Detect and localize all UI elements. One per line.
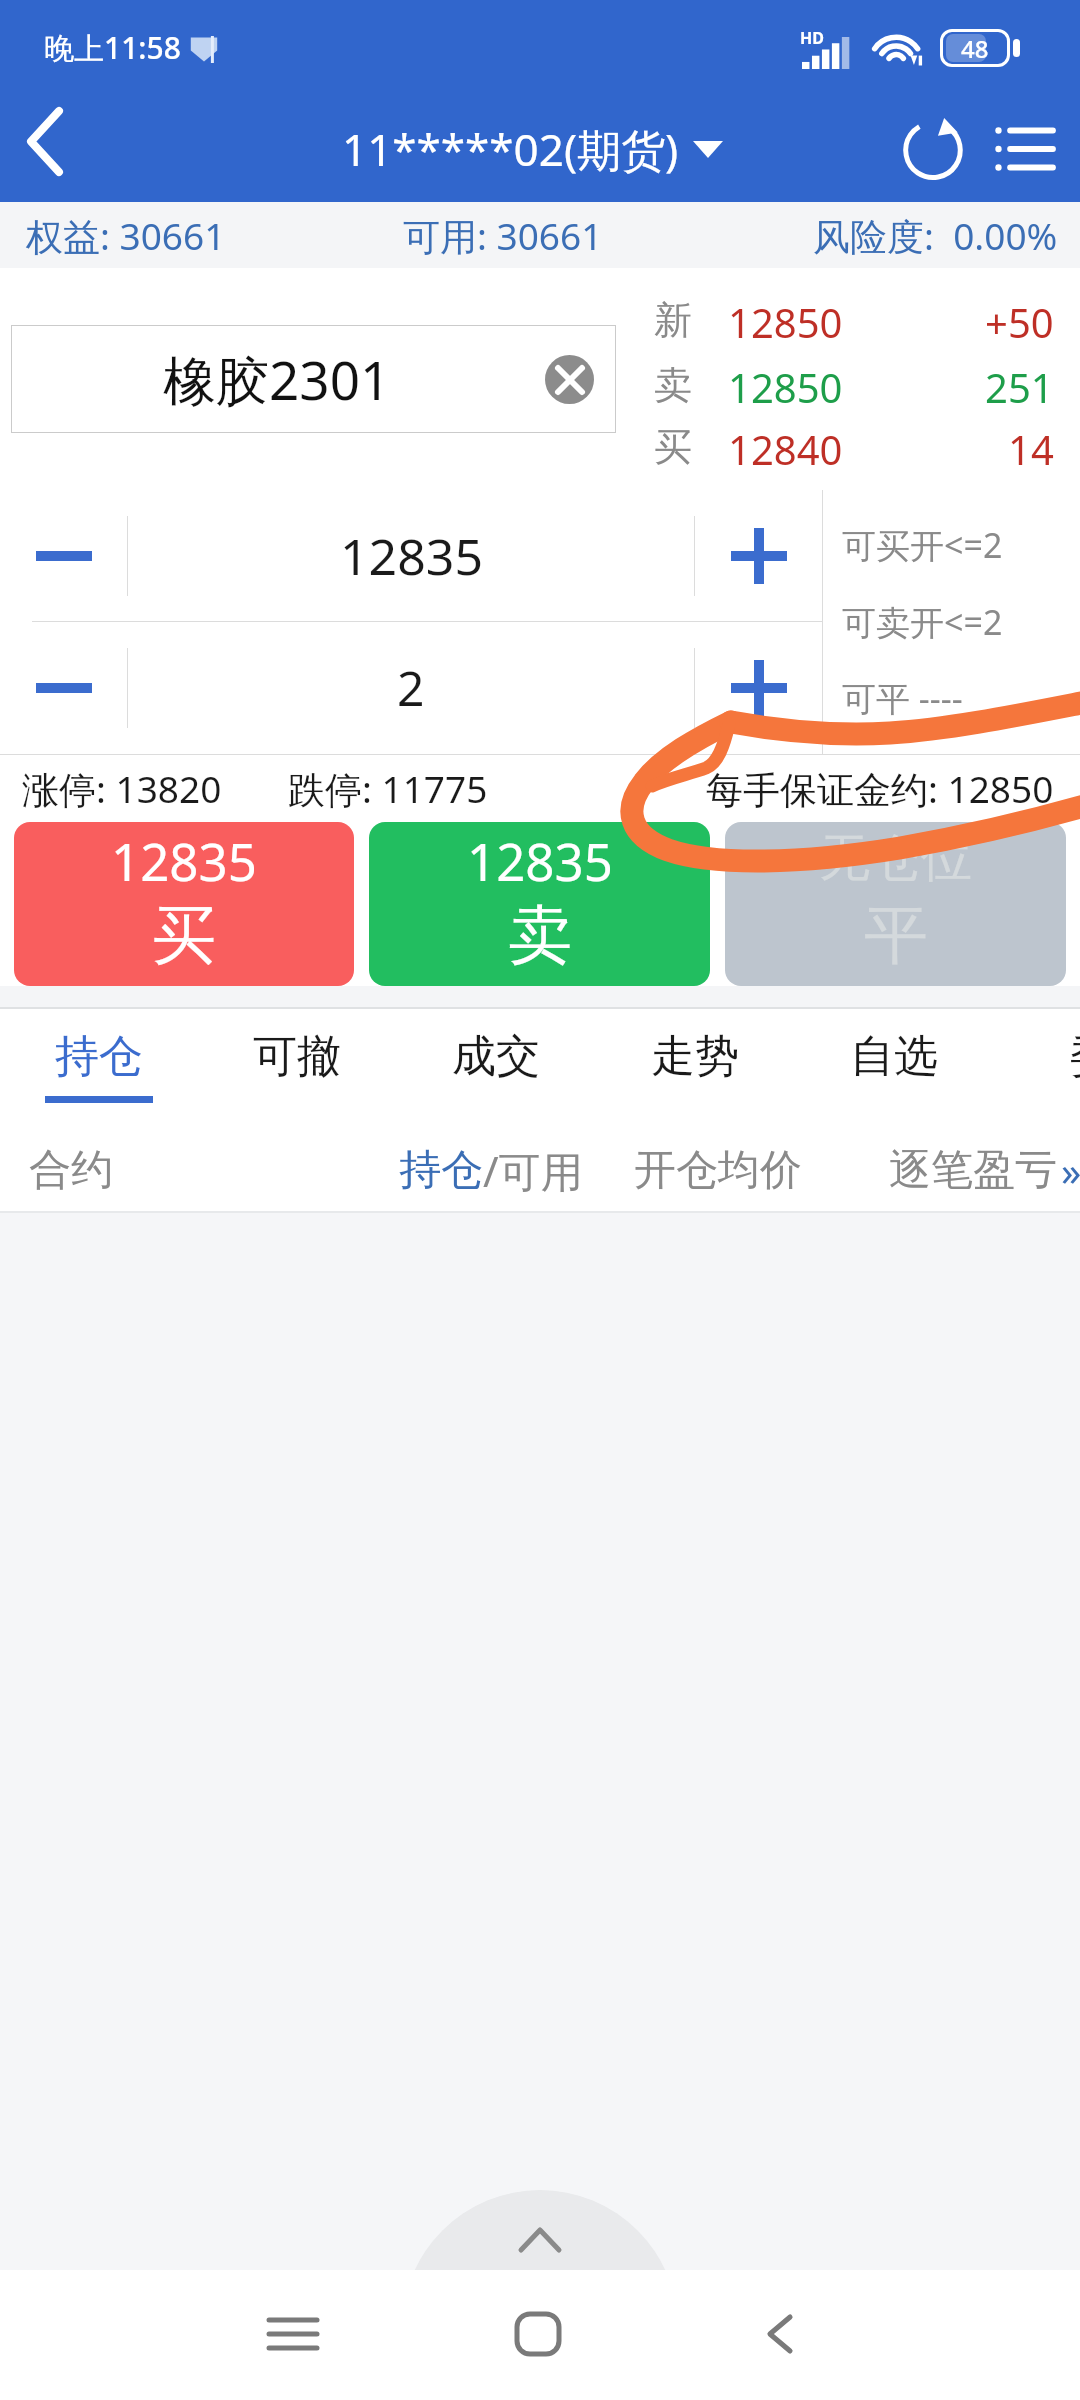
button[interactable]: Home xyxy=(448,2270,628,2400)
button[interactable]: Decrease xyxy=(0,622,127,753)
button[interactable]: Recent apps xyxy=(203,2270,383,2400)
staticText: 晚上11:58 xyxy=(44,27,181,68)
staticText: 可用: 30661 xyxy=(403,210,603,261)
staticText: 12835 xyxy=(340,522,483,590)
staticText: 委 xyxy=(1070,1029,1080,1084)
staticText: » xyxy=(1061,1143,1080,1197)
staticText: +50 xyxy=(985,295,1054,349)
staticText: 橡胶2301 xyxy=(163,343,391,415)
staticText: 12850 xyxy=(728,360,843,414)
staticText: 可买开<=2 xyxy=(842,522,1003,568)
staticText: 持仓 xyxy=(55,1029,143,1084)
staticText: 权益: 30661 xyxy=(26,210,226,261)
staticText: 风险度: 0.00% xyxy=(813,210,1058,261)
staticText: 12835 xyxy=(467,826,613,895)
staticText: 可撤 xyxy=(253,1029,341,1084)
button[interactable]: 持仓 xyxy=(0,1009,198,1127)
button[interactable]: 成交 xyxy=(397,1009,595,1127)
staticText: 11*****02(期货) xyxy=(342,119,679,179)
staticText: /可用 xyxy=(483,1142,583,1199)
staticText: 无仓位 xyxy=(819,826,972,890)
staticText: 2 xyxy=(397,655,425,720)
button[interactable]: 12835 xyxy=(14,822,354,986)
button[interactable]: 无仓位 xyxy=(725,822,1066,986)
staticText: 14 xyxy=(1008,422,1054,476)
button[interactable]: Expand panel xyxy=(401,2190,679,2270)
staticText: 12835 xyxy=(111,826,257,895)
staticText: HD xyxy=(800,27,824,49)
button[interactable]: List menu xyxy=(966,95,1080,202)
staticText: 每手保证金约: 12850 xyxy=(706,763,1054,814)
button[interactable]: Back xyxy=(0,95,112,202)
button[interactable]: Increase xyxy=(695,622,822,753)
staticText: 买 xyxy=(654,423,692,471)
staticText: 涨停: 13820 xyxy=(22,763,222,814)
staticText: 48 xyxy=(961,32,989,65)
button[interactable]: 橡胶2301 xyxy=(11,325,616,433)
staticText: 开仓均价 xyxy=(634,1144,802,1197)
staticText: 成交 xyxy=(452,1029,540,1084)
staticText: 自选 xyxy=(850,1029,938,1084)
staticText: 买 xyxy=(152,895,216,976)
staticText: 平 xyxy=(864,895,928,976)
button[interactable]: 自选 xyxy=(795,1009,993,1127)
staticText: 可卖开<=2 xyxy=(842,599,1003,645)
staticText: 251 xyxy=(985,360,1054,414)
staticText: 合约 xyxy=(29,1144,113,1197)
button[interactable]: 可撤 xyxy=(198,1009,396,1127)
staticText: 12850 xyxy=(728,295,843,349)
button[interactable]: 11*****02(期货) xyxy=(342,119,723,179)
staticText: 持仓 xyxy=(399,1144,483,1197)
button[interactable]: Decrease xyxy=(0,490,127,621)
button[interactable]: Clear xyxy=(545,355,594,404)
button[interactable]: Increase xyxy=(695,490,822,621)
button[interactable]: Back xyxy=(690,2270,870,2400)
staticText: 12840 xyxy=(728,422,843,476)
staticText: 逐笔盈亏 xyxy=(889,1144,1057,1197)
button[interactable]: 12835 xyxy=(369,822,710,986)
button[interactable]: 走势 xyxy=(596,1009,794,1127)
button[interactable]: 委 xyxy=(993,1009,1080,1127)
staticText: 新 xyxy=(654,296,692,344)
staticText: 卖 xyxy=(508,895,572,976)
staticText: 卖 xyxy=(654,361,692,409)
button[interactable]: Refresh xyxy=(875,95,991,202)
staticText: 走势 xyxy=(651,1029,739,1084)
staticText: 可平 ---- xyxy=(842,675,963,721)
staticText: 跌停: 11775 xyxy=(288,763,488,814)
